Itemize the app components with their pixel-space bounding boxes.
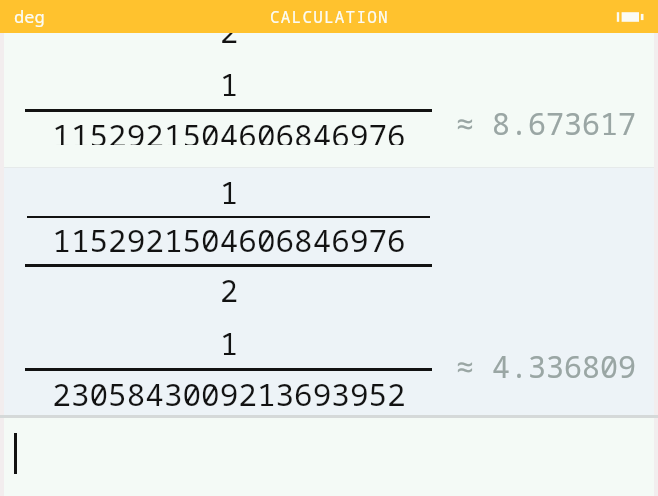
staticText: 2305843009213693952: [52, 373, 406, 415]
button[interactable]: 2: [4, 33, 654, 167]
staticText: 1: [220, 323, 238, 364]
button[interactable]: [4, 418, 654, 496]
staticText: 1152921504606846976: [52, 219, 406, 261]
staticText: 1152921504606846976: [52, 114, 406, 145]
staticText: ≈ 4.336809: [456, 346, 636, 387]
button[interactable]: deg: [14, 5, 45, 28]
staticText: ≈ 8.673617: [456, 103, 636, 144]
staticText: 1: [220, 64, 238, 105]
staticText: 2: [220, 270, 238, 311]
staticText: 2: [220, 33, 238, 52]
button[interactable]: 1: [4, 168, 654, 415]
staticText: CALCULATION: [270, 6, 389, 28]
staticText: 1: [220, 172, 238, 213]
button[interactable]: Battery: [615, 7, 645, 27]
